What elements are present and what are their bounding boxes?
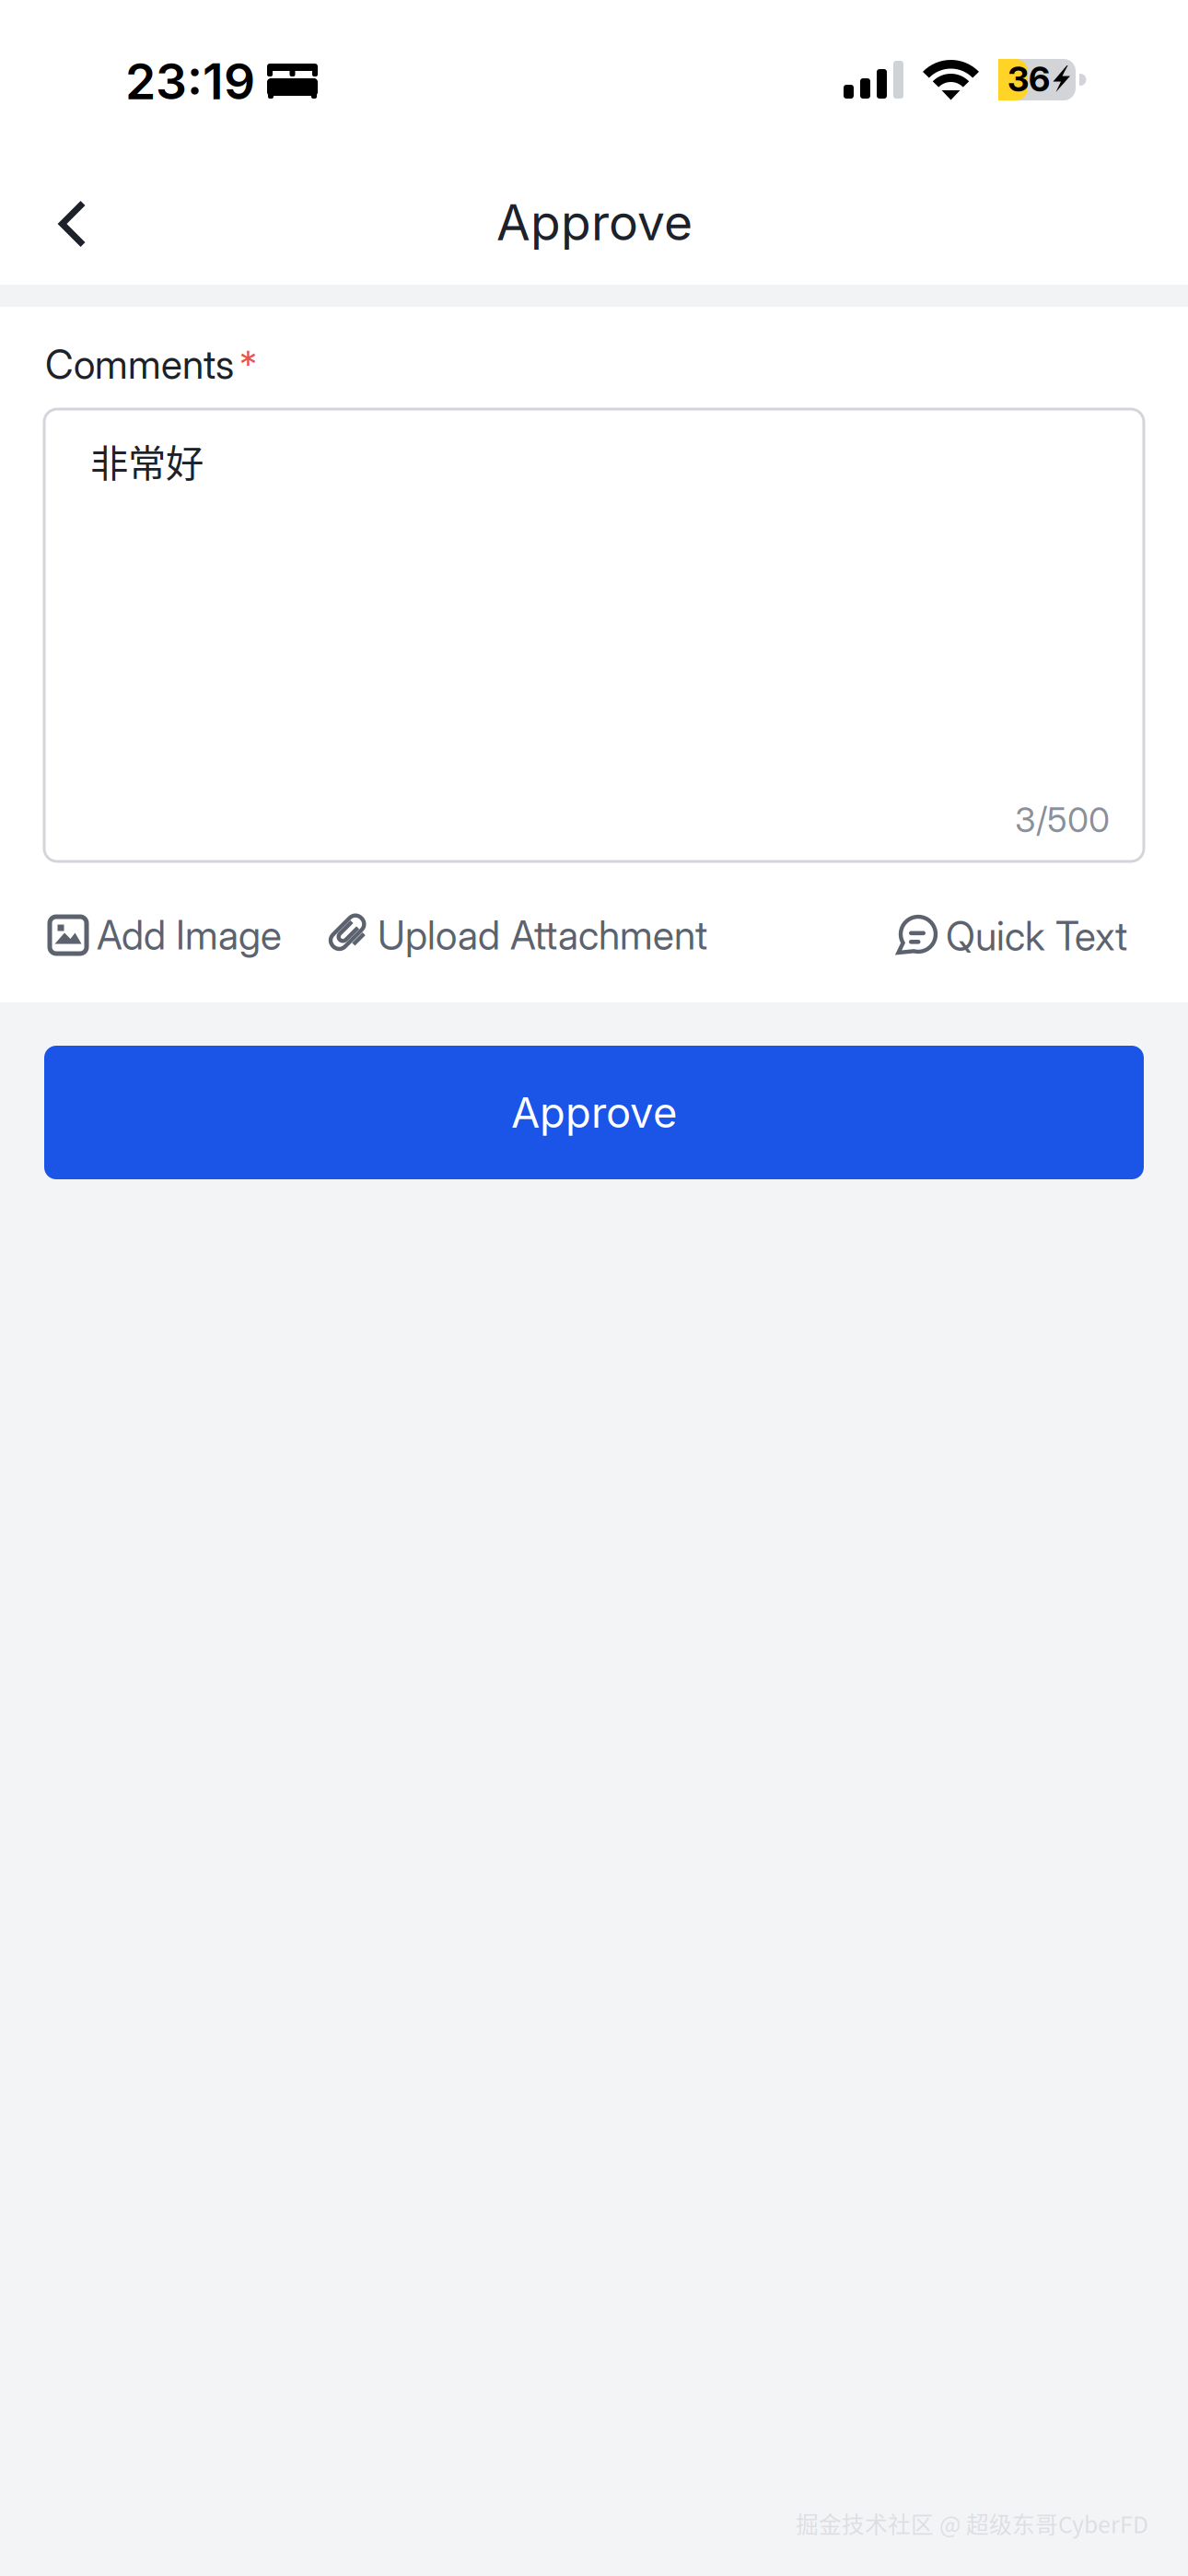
button[interactable]: Back <box>22 173 123 275</box>
staticText: Comments <box>45 341 234 388</box>
staticText: 36 <box>1007 58 1050 100</box>
button[interactable]: Approve <box>44 1046 1144 1179</box>
staticText: Upload Attachment <box>378 911 707 959</box>
button[interactable]: 非常好 <box>44 409 1144 861</box>
staticText: 掘金技术社区 @ 超级东哥CyberFD <box>796 2507 1148 2540</box>
staticText: Add Image <box>97 911 282 959</box>
staticText: 23:19 <box>125 52 255 111</box>
staticText: 3/500 <box>1015 799 1110 840</box>
staticText: 非常好 <box>90 433 204 488</box>
staticText: Approve <box>496 193 693 252</box>
button[interactable]: Upload Attachment <box>325 913 707 957</box>
staticText: Quick Text <box>946 912 1127 960</box>
staticText: * <box>239 342 257 386</box>
button[interactable]: Add Image <box>50 914 282 956</box>
button[interactable]: Quick Text <box>897 914 1127 958</box>
staticText: Approve <box>511 1087 677 1138</box>
